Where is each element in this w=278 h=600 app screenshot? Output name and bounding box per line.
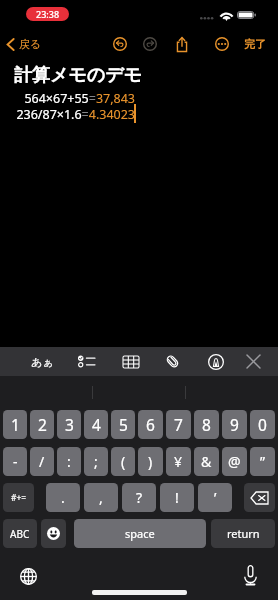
button[interactable]: Emoji [41, 519, 66, 548]
staticText: 1 [11, 414, 20, 435]
button[interactable]: ) [138, 447, 163, 476]
staticText: 8 [202, 414, 211, 435]
button[interactable]: Redo [136, 30, 164, 58]
staticText: 計算メモのデモ [14, 64, 143, 87]
button[interactable]: Checklist [72, 347, 101, 376]
button[interactable]: ( [111, 447, 135, 476]
staticText: 236/87×1.6=4.34023 [0, 106, 135, 123]
button[interactable]: More [208, 30, 236, 58]
button[interactable]: Backspace [244, 483, 275, 512]
button[interactable]: 9 [222, 410, 247, 439]
button[interactable]: 7 [166, 410, 191, 439]
button[interactable]: 戻る [0, 34, 48, 54]
button[interactable]: 6 [138, 410, 163, 439]
button[interactable]: Text format [28, 347, 57, 376]
staticText: ? [136, 488, 143, 507]
button[interactable]: Attach [158, 347, 187, 376]
staticText: , [99, 488, 103, 507]
button[interactable]: Table [116, 347, 145, 376]
button[interactable]: Dictation [236, 561, 264, 589]
button[interactable]: @ [222, 447, 247, 476]
button[interactable]: ? [122, 483, 156, 512]
staticText: - [13, 452, 18, 471]
staticText: 完了 [244, 37, 266, 51]
button[interactable]: space [74, 519, 206, 548]
staticText: 0 [258, 414, 267, 435]
button[interactable]: 3 [57, 410, 81, 439]
staticText: ; [94, 452, 98, 471]
staticText: #+= [11, 492, 27, 504]
button[interactable]: 2 [30, 410, 54, 439]
staticText: ABC [10, 527, 30, 541]
button[interactable]: Undo [106, 30, 134, 58]
button[interactable]: . [46, 483, 80, 512]
staticText: 23:38 [36, 8, 60, 20]
staticText: 9 [230, 414, 239, 435]
staticText: / [39, 452, 45, 471]
staticText: ) [148, 452, 153, 471]
button[interactable]: / [30, 447, 54, 476]
staticText: 7 [174, 414, 183, 435]
button[interactable]: : [57, 447, 81, 476]
staticText: 4 [92, 414, 101, 435]
button[interactable]: #+= [3, 483, 34, 512]
staticText: 2 [38, 414, 47, 435]
staticText: 6 [146, 414, 155, 435]
staticText: 戻る [19, 37, 42, 51]
button[interactable]: 8 [194, 410, 219, 439]
staticText: & [201, 452, 212, 471]
staticText: ¥ [174, 452, 183, 471]
button[interactable]: ’ [198, 483, 232, 512]
staticText: ! [175, 488, 179, 507]
staticText: ’ [214, 488, 217, 507]
button[interactable]: Share [168, 30, 196, 58]
staticText: : [67, 452, 71, 471]
button[interactable]: & [194, 447, 219, 476]
button[interactable]: ” [250, 447, 275, 476]
button[interactable]: 4 [84, 410, 108, 439]
button[interactable]: ! [160, 483, 194, 512]
button[interactable]: 1 [3, 410, 27, 439]
button[interactable]: ABC [3, 519, 37, 548]
button[interactable]: Close keyboard [239, 347, 268, 376]
staticText: space [125, 526, 155, 541]
button[interactable]: , [84, 483, 118, 512]
staticText: 564×67+55=37,843 [0, 90, 135, 107]
staticText: ( [121, 452, 126, 471]
staticText: ” [260, 452, 266, 471]
staticText: 5 [119, 414, 128, 435]
button[interactable]: - [3, 447, 27, 476]
button[interactable]: ¥ [166, 447, 191, 476]
button[interactable]: 完了 [232, 33, 278, 55]
staticText: あぁ [31, 355, 54, 369]
button[interactable]: return [211, 519, 275, 548]
staticText: return [227, 526, 260, 541]
button[interactable]: 0 [250, 410, 275, 439]
button[interactable]: ; [84, 447, 108, 476]
button[interactable]: 5 [111, 410, 135, 439]
button[interactable]: Change keyboard [14, 562, 42, 590]
staticText: . [61, 488, 65, 507]
staticText: @ [228, 452, 241, 471]
staticText: 3 [65, 414, 74, 435]
button[interactable]: Markup [201, 347, 230, 376]
